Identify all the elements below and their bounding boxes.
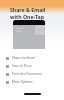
staticText: Save to Drive bbox=[12, 64, 32, 68]
button[interactable]: Print this Document bbox=[0, 70, 64, 78]
staticText: More Options bbox=[12, 80, 33, 84]
staticText: Print this Document bbox=[12, 72, 42, 76]
button[interactable]: More Options bbox=[0, 78, 64, 86]
button[interactable]: Share via Email bbox=[0, 54, 64, 62]
staticText: Share via Email bbox=[12, 56, 35, 60]
button[interactable]: Save to Drive bbox=[0, 62, 64, 70]
staticText: Share & Email bbox=[10, 6, 46, 13]
staticText: with One-Tap bbox=[10, 13, 44, 20]
